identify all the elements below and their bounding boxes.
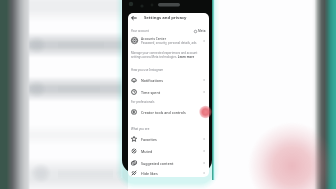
staticText: What you see — [131, 127, 150, 131]
staticText: Muted — [141, 149, 153, 154]
staticText: Your account — [131, 29, 149, 33]
button[interactable]: Notifications — [128, 74, 209, 86]
staticText: Suggested content — [141, 161, 174, 166]
staticText: Password, security, personal details, ad… — [141, 41, 197, 45]
button[interactable]: Accounts Center — [128, 35, 209, 46]
staticText: Meta — [198, 29, 206, 33]
button[interactable]: Muted — [128, 145, 209, 157]
button[interactable]: Hide likes — [128, 169, 209, 177]
button[interactable]: Time spent — [128, 86, 209, 98]
staticText: Manage your connected experiences and ac… — [131, 51, 204, 59]
button[interactable]: Suggested content — [128, 157, 209, 169]
staticText: Hide likes — [141, 171, 158, 176]
staticText: Accounts Center — [141, 37, 167, 41]
staticText: How you use Instagram — [131, 68, 164, 72]
staticText: For professionals — [131, 100, 155, 104]
staticText: Creator tools and controls — [141, 110, 186, 115]
staticText: Favorites — [141, 137, 157, 142]
staticText: Settings and privacy — [144, 15, 187, 21]
button[interactable]: Favorites — [128, 133, 209, 145]
button[interactable]: Creator tools and controls — [128, 106, 209, 118]
button[interactable]: Back — [130, 14, 138, 22]
staticText: Notifications — [141, 78, 163, 83]
staticText: Time spent — [141, 90, 161, 95]
